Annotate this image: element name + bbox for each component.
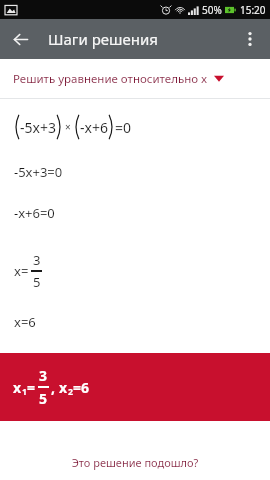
staticText: 1 [22, 386, 27, 398]
staticText: × [65, 120, 71, 134]
staticText: x [59, 378, 68, 397]
staticText: 50% [202, 3, 222, 17]
staticText: x= [14, 262, 29, 280]
button[interactable]: Back [0, 19, 40, 59]
staticText: -x+6 [80, 118, 108, 137]
staticText: Решить уравнение относительно x [13, 71, 208, 87]
staticText: 5 [39, 389, 48, 408]
button[interactable]: Решить уравнение относительно x [0, 59, 270, 98]
staticText: x=6 [14, 313, 36, 331]
staticText: , [51, 378, 59, 397]
staticText: -5x+3=0 [14, 163, 63, 181]
button[interactable]: More options [230, 19, 270, 59]
staticText: Шаги решения [48, 29, 158, 49]
staticText: -5x+3 [20, 118, 56, 137]
staticText: = [27, 378, 36, 397]
staticText: 5 [33, 273, 41, 291]
staticText: 15:20 [240, 3, 266, 17]
button[interactable]: Это решение подошло? [0, 455, 270, 470]
staticText: 2 [68, 386, 73, 398]
staticText: -x+6=0 [14, 204, 55, 222]
staticText: =6 [73, 378, 90, 397]
staticText: 3 [33, 251, 41, 269]
staticText: x [13, 378, 22, 397]
staticText: =0 [115, 118, 132, 137]
staticText: 3 [39, 366, 48, 385]
